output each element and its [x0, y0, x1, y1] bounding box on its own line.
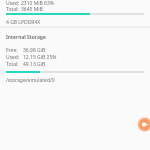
button[interactable]	[132, 112, 150, 137]
staticText: 4 GB LPDDR4X	[6, 19, 41, 26]
staticText: Total:	[6, 6, 19, 13]
staticText: 2310 MiB 63%	[21, 0, 54, 7]
staticText: /storage/emulated/0	[6, 77, 55, 84]
staticText: Used:	[6, 0, 20, 7]
staticText: 49.13 GiB	[23, 61, 46, 68]
staticText: 12.15 GiB 25%	[23, 54, 57, 61]
staticText: Free:	[6, 47, 18, 54]
staticText: Used:	[6, 54, 20, 61]
staticText: 36.98 GiB	[23, 47, 46, 54]
staticText: Total:	[6, 61, 19, 68]
staticText: 3645 MiB	[21, 6, 43, 13]
staticText: Internal Storage	[6, 34, 46, 41]
